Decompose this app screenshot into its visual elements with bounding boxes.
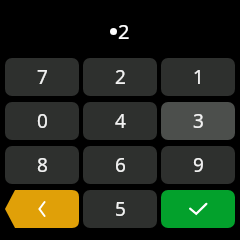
button[interactable]: 2	[83, 58, 157, 96]
button[interactable]: Delete	[5, 190, 79, 228]
button[interactable]: 1	[161, 58, 235, 96]
button[interactable]: 7	[5, 58, 79, 96]
button[interactable]: 6	[83, 146, 157, 184]
button[interactable]: 4	[83, 102, 157, 140]
button[interactable]: 9	[161, 146, 235, 184]
staticText: 2	[118, 18, 130, 45]
staticText: 5	[115, 196, 126, 222]
staticText: 2	[115, 64, 126, 90]
staticText: 7	[37, 64, 48, 90]
button[interactable]: 0	[5, 102, 79, 140]
staticText: 3	[193, 108, 204, 134]
button[interactable]: 8	[5, 146, 79, 184]
staticText: 1	[193, 64, 204, 90]
staticText: 9	[193, 152, 204, 178]
staticText: 6	[115, 152, 126, 178]
staticText: 8	[37, 152, 48, 178]
button[interactable]: 3	[161, 102, 235, 140]
button[interactable]: 5	[83, 190, 157, 228]
button[interactable]: Confirm	[161, 190, 235, 228]
staticText: 0	[37, 108, 48, 134]
staticText: 4	[115, 108, 126, 134]
